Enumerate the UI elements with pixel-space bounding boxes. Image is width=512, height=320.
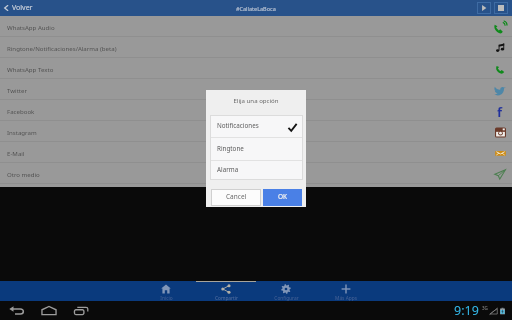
staticText: Más Apps <box>335 295 357 301</box>
button[interactable]: Facebook <box>0 100 512 121</box>
button[interactable]: Home <box>39 301 59 320</box>
staticText: Alarma <box>217 165 239 174</box>
staticText: Elija una opción <box>206 96 306 104</box>
button[interactable]: WhatsApp Audio <box>0 16 512 37</box>
staticText: Inicio <box>160 295 173 301</box>
staticText: Compartir <box>215 295 238 301</box>
staticText: Volver <box>12 3 33 13</box>
staticText: Configurar <box>274 295 299 301</box>
button[interactable]: Stop <box>494 2 508 14</box>
button[interactable]: Notificaciones <box>210 115 303 137</box>
button[interactable]: WhatsApp Texto <box>0 58 512 79</box>
button[interactable]: Twitter <box>0 79 512 100</box>
button[interactable]: Volver <box>0 0 37 16</box>
button[interactable]: Cancel <box>211 189 261 206</box>
button[interactable]: Otro medio <box>0 163 512 184</box>
button[interactable]: E-Mail <box>0 142 512 163</box>
staticText: Facebook <box>7 107 35 115</box>
staticText: #CallateLaBoca <box>236 5 276 12</box>
button[interactable]: Compartir <box>196 281 256 301</box>
button[interactable]: Alarma <box>210 161 303 180</box>
button[interactable]: Recent apps <box>71 301 91 320</box>
button[interactable]: Play <box>477 2 491 14</box>
staticText: Cancel <box>226 192 247 201</box>
staticText: WhatsApp Audio <box>7 23 55 31</box>
staticText: OK <box>278 192 288 201</box>
button[interactable]: Instagram <box>0 121 512 142</box>
button[interactable]: Más Apps <box>316 281 376 301</box>
staticText: WhatsApp Texto <box>7 65 54 73</box>
button[interactable]: Ringtone <box>210 138 303 160</box>
button[interactable]: Inicio <box>136 281 196 301</box>
staticText: 9:19 <box>454 302 479 319</box>
button[interactable]: Ringtone/Notificaciones/Alarma (beta) <box>0 37 512 58</box>
staticText: Otro medio <box>7 170 40 178</box>
staticText: 3G <box>482 305 488 311</box>
staticText: f <box>497 103 503 119</box>
button[interactable]: Configurar <box>256 281 316 301</box>
button[interactable]: OK <box>263 189 302 206</box>
staticText: Ringtone <box>217 144 244 153</box>
staticText: Instagram <box>7 128 37 136</box>
staticText: Notificaciones <box>217 121 259 130</box>
staticText: E-Mail <box>7 149 25 157</box>
staticText: Ringtone/Notificaciones/Alarma (beta) <box>7 44 117 52</box>
staticText: Twitter <box>7 86 27 94</box>
button[interactable]: Back <box>6 301 26 320</box>
